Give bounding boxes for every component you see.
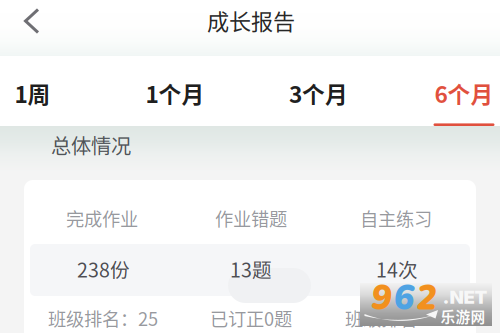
staticText: 6个月	[434, 77, 493, 109]
staticText: .NET	[442, 286, 487, 308]
staticText: 2	[416, 274, 437, 322]
staticText: 已订正0题	[210, 305, 292, 331]
staticText: 14次	[376, 255, 418, 283]
staticText: 班级排名：25	[48, 305, 158, 331]
staticText: 13题	[230, 255, 272, 283]
staticText: 乐游网	[440, 305, 485, 327]
staticText: 自主练习	[360, 205, 432, 231]
staticText: 完成作业	[66, 205, 138, 231]
button[interactable]: 1个月	[115, 56, 235, 126]
staticText: 成长报告	[207, 4, 295, 36]
button[interactable]: 3个月	[258, 56, 378, 126]
staticText: 班级排名：12	[345, 305, 455, 331]
staticText: 238份	[77, 255, 130, 283]
button[interactable]: Back	[2, 0, 58, 56]
button[interactable]: 1周	[0, 56, 92, 126]
staticText: 9	[371, 274, 392, 322]
staticText: 1周	[14, 77, 50, 109]
button[interactable]: 6个月	[404, 56, 500, 126]
staticText: 3个月	[289, 77, 348, 109]
staticText: 总体情况	[51, 130, 131, 160]
staticText: 6	[393, 274, 414, 322]
staticText: 作业错题	[215, 205, 287, 231]
staticText: 1个月	[145, 77, 204, 109]
